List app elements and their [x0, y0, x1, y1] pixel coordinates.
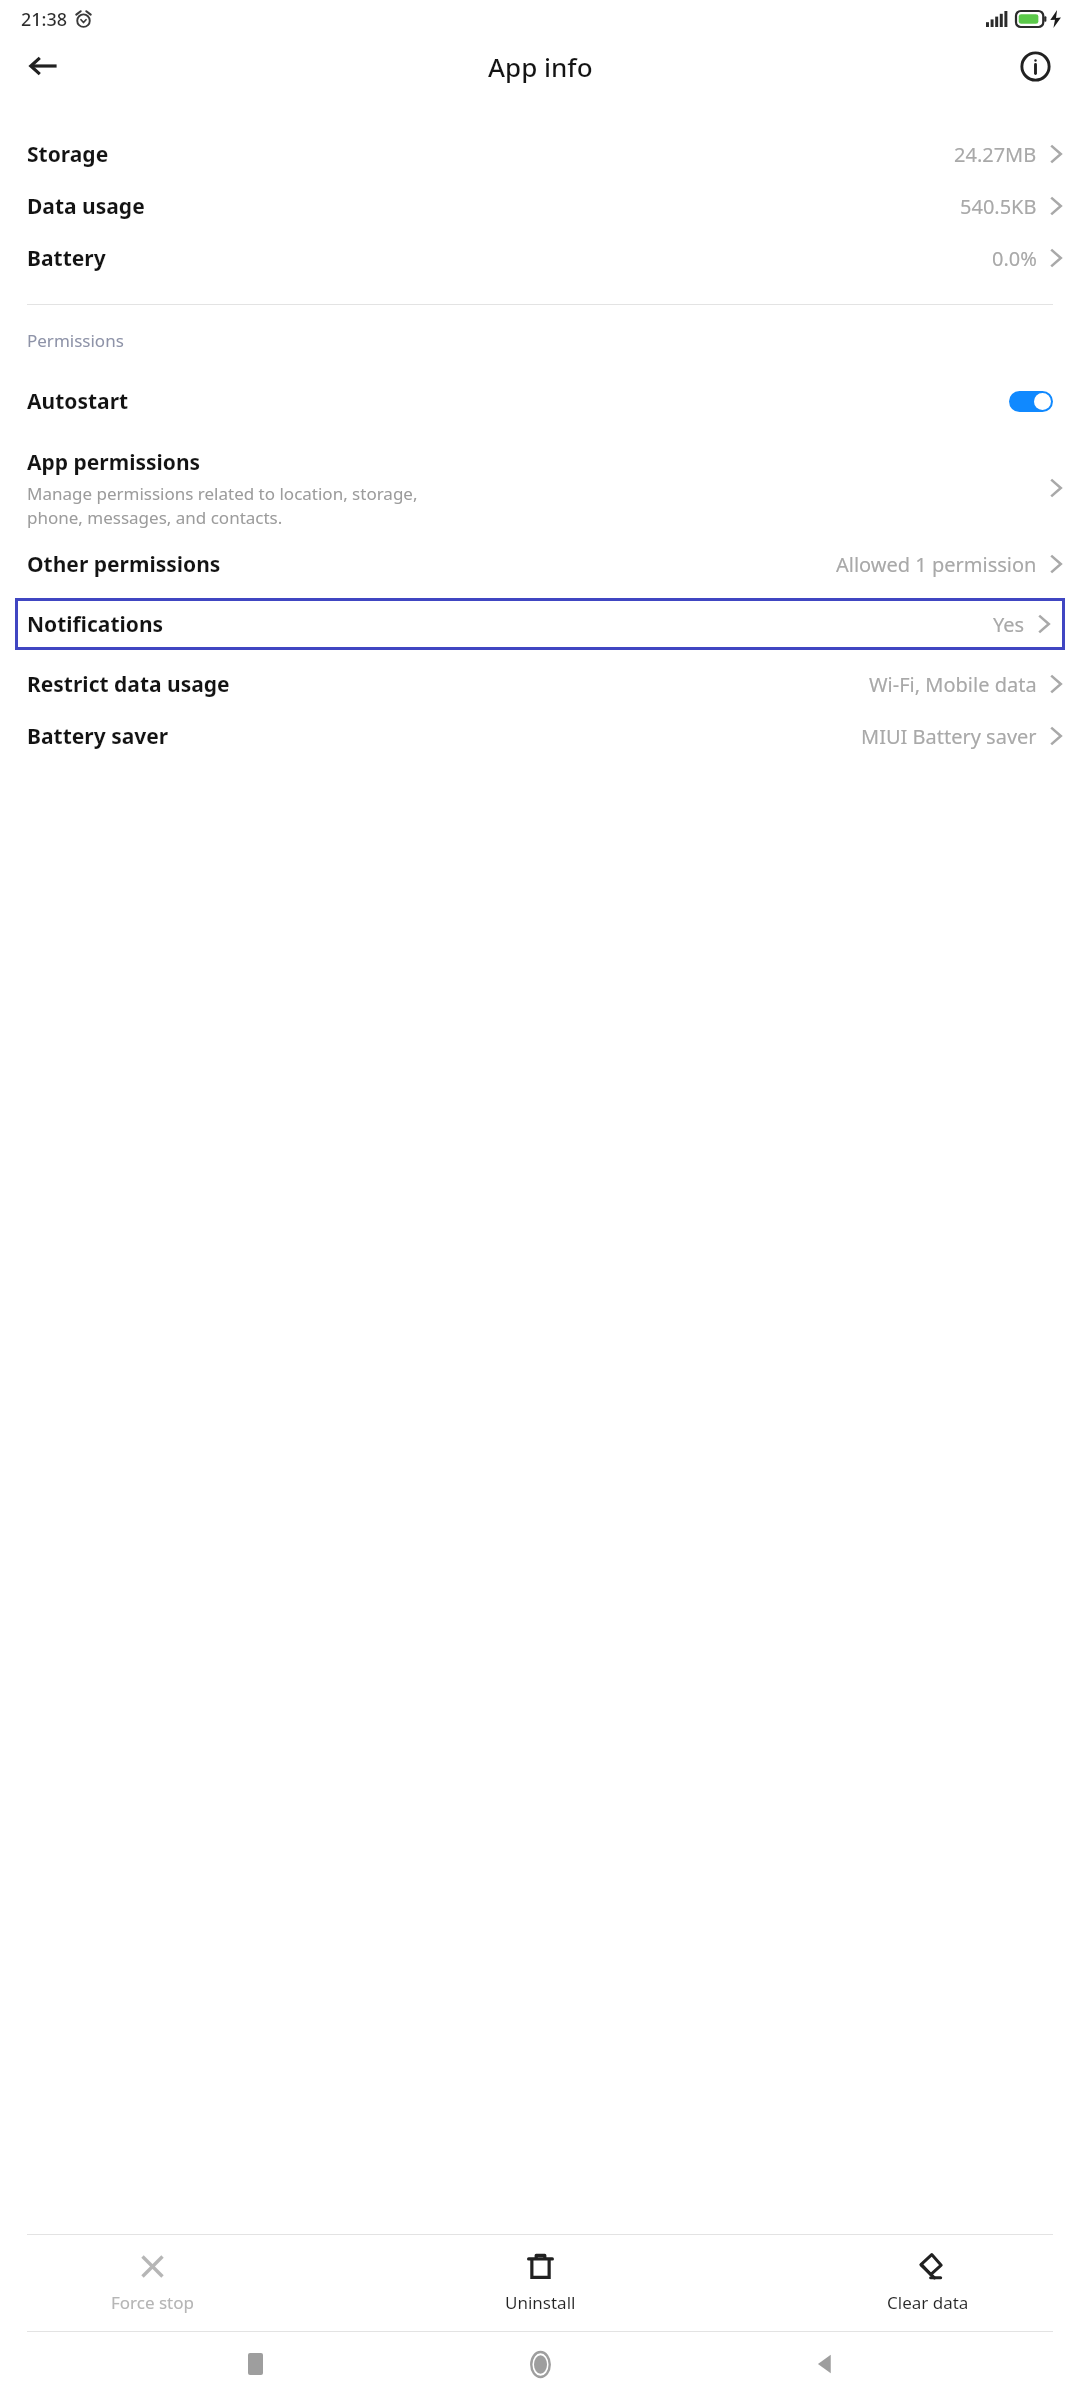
staticText: Wi-Fi, Mobile data — [869, 671, 1037, 698]
button[interactable]: Clear data — [881, 2253, 975, 2314]
staticText: App info — [488, 49, 593, 84]
button[interactable]: App permissions — [0, 442, 1080, 534]
button[interactable]: Home — [510, 2334, 570, 2394]
staticText: Data usage — [27, 192, 145, 221]
staticText: Notifications — [27, 610, 164, 639]
staticText: Autostart — [27, 387, 1009, 416]
staticText: Other permissions — [27, 550, 221, 579]
staticText: Clear data — [887, 2291, 969, 2314]
button[interactable]: Force stop — [105, 2253, 200, 2314]
button[interactable]: Back — [795, 2334, 855, 2394]
button[interactable]: Battery saver — [0, 710, 1080, 762]
staticText: Allowed 1 permission — [836, 551, 1037, 578]
button[interactable]: Autostart — [0, 370, 1080, 432]
button[interactable]: Storage — [0, 128, 1080, 180]
staticText: App permissions — [27, 448, 201, 477]
button[interactable]: Recents — [225, 2334, 285, 2394]
staticText: Permissions — [27, 329, 124, 352]
staticText: 21:38 — [21, 7, 68, 32]
button[interactable]: App details — [1012, 43, 1058, 89]
staticText: Battery — [27, 244, 106, 273]
button[interactable]: Other permissions — [0, 538, 1080, 590]
button[interactable]: Notifications — [15, 598, 1065, 650]
staticText: Yes — [993, 611, 1025, 638]
staticText: Uninstall — [505, 2291, 576, 2314]
button[interactable]: Restrict data usage — [0, 658, 1080, 710]
staticText: 540.5KB — [960, 193, 1037, 220]
staticText: MIUI Battery saver — [861, 723, 1037, 750]
staticText: Manage permissions related to location, … — [27, 482, 418, 529]
staticText: 0.0% — [992, 245, 1037, 272]
staticText: 24.27MB — [954, 141, 1037, 168]
button[interactable]: Battery — [0, 232, 1080, 284]
button[interactable]: Back — [21, 43, 67, 89]
button[interactable]: Data usage — [0, 180, 1080, 232]
staticText: Force stop — [111, 2291, 194, 2314]
button[interactable]: Uninstall — [499, 2253, 582, 2314]
staticText: Restrict data usage — [27, 670, 230, 699]
staticText: Storage — [27, 140, 109, 169]
staticText: Battery saver — [27, 722, 169, 751]
